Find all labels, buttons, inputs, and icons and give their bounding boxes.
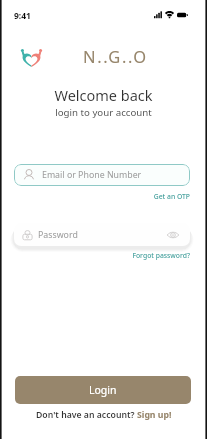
- staticText: 9:41: [14, 10, 31, 22]
- other: Show password: [167, 231, 179, 239]
- staticText: login to your account: [0, 106, 207, 119]
- staticText: Don't have an account?: [36, 409, 137, 421]
- staticText: Email or Phone Number: [42, 169, 142, 181]
- button[interactable]: Forgot password?: [0, 251, 190, 260]
- staticText: Welcome back: [0, 85, 207, 105]
- button[interactable]: Email or Phone Number: [14, 164, 190, 186]
- button[interactable]: Password: [14, 223, 190, 246]
- button[interactable]: Sign up!: [137, 409, 172, 421]
- button[interactable]: Get an OTP: [0, 192, 190, 201]
- staticText: Password: [38, 229, 78, 241]
- staticText: N..G..O: [83, 45, 148, 67]
- button[interactable]: Login: [15, 376, 191, 404]
- staticText: Login: [89, 383, 117, 397]
